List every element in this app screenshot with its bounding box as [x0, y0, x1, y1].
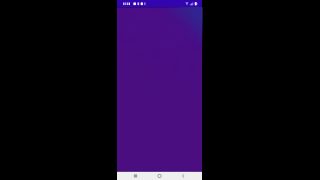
button[interactable]: Recents	[123, 172, 147, 180]
button[interactable]: Home	[147, 172, 171, 180]
button[interactable]: Back	[171, 172, 195, 180]
